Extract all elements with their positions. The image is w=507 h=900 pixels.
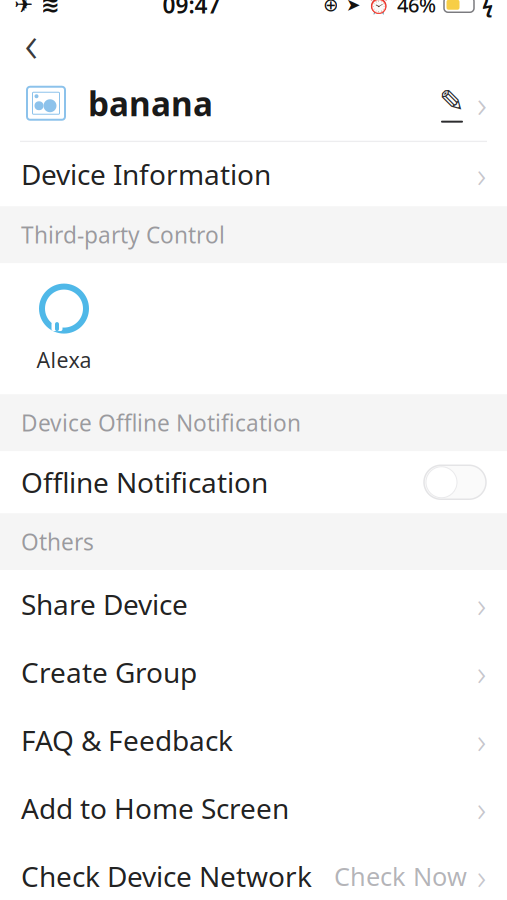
staticText: Third-party Control [21, 220, 225, 250]
staticText: › [477, 581, 486, 627]
button[interactable]: Create Group [0, 638, 507, 706]
staticText: ✈ [14, 0, 33, 18]
staticText: FAQ & Feedback [21, 722, 233, 759]
button[interactable]: FAQ & Feedback [0, 706, 507, 774]
staticText: Check Now [334, 859, 467, 893]
staticText: banana [88, 81, 213, 125]
staticText: Share Device [21, 586, 188, 623]
staticText: Offline Notification [21, 464, 268, 501]
staticText: Device Offline Notification [21, 408, 301, 438]
button[interactable]: Device Information [0, 142, 507, 206]
staticText: › [477, 649, 486, 695]
button[interactable]: Offline Notification [0, 451, 507, 513]
button[interactable]: Back [8, 20, 54, 66]
staticText: › [477, 78, 487, 128]
button[interactable]: Add to Home Screen [0, 774, 507, 842]
staticText: 09:47 [162, 0, 220, 20]
button[interactable]: Alexa [18, 284, 110, 374]
staticText: Check Device Network [21, 858, 312, 895]
staticText: ‹ [24, 9, 37, 76]
staticText: › [477, 717, 486, 763]
staticText: 46% [397, 0, 436, 18]
staticText: › [477, 853, 486, 899]
staticText: ➤ [346, 0, 361, 15]
button[interactable]: Check Device Network [0, 842, 507, 900]
staticText: ⏰ [368, 0, 390, 15]
staticText: › [477, 151, 486, 197]
staticText: › [477, 785, 486, 831]
staticText: Create Group [21, 654, 197, 691]
staticText: Alexa [36, 346, 91, 374]
staticText: ⊕ [323, 0, 339, 15]
button[interactable]: banana [0, 66, 507, 141]
staticText: Device Information [21, 156, 271, 193]
staticText: Add to Home Screen [21, 790, 289, 827]
button[interactable]: Share Device [0, 570, 507, 638]
staticText: ✎ [439, 84, 465, 119]
staticText: ϟ [482, 0, 493, 18]
staticText: Others [21, 527, 94, 557]
staticText: ≋ [41, 0, 60, 18]
